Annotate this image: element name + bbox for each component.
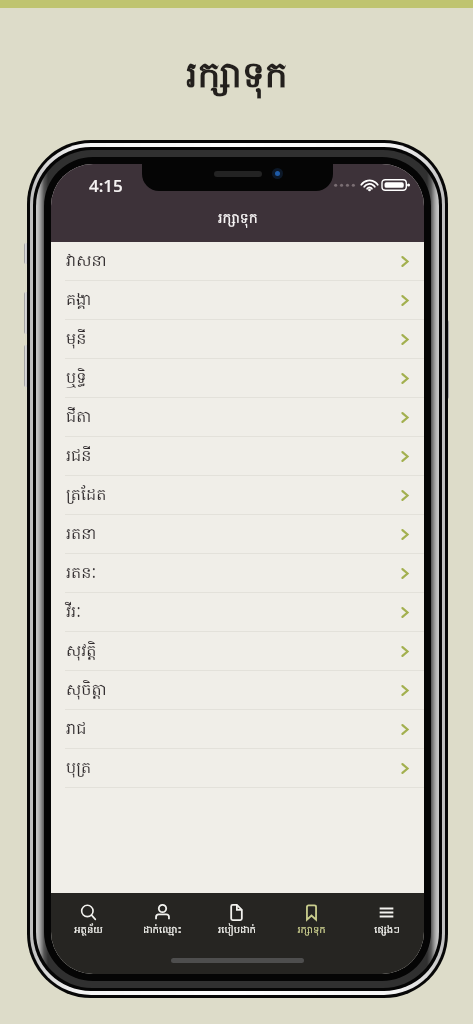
staticText: វាសនា — [66, 250, 107, 273]
staticText: មុនី — [66, 328, 87, 351]
button[interactable]: How to — [199, 903, 274, 938]
staticText: ដាក់ឈ្មោះ — [143, 923, 182, 938]
button[interactable]: វាសនា — [51, 242, 424, 281]
button[interactable]: រតនា — [51, 515, 424, 554]
staticText: រជនី — [66, 445, 92, 468]
staticText: រាជ — [66, 718, 87, 741]
button[interactable]: រតនៈ — [51, 554, 424, 593]
button[interactable]: Name — [125, 903, 199, 938]
staticText: រតនៈ — [66, 562, 97, 585]
staticText: ឬទ្ធិ — [66, 367, 87, 390]
button[interactable]: ឬទ្ធិ — [51, 359, 424, 398]
button[interactable]: More — [349, 903, 424, 938]
button[interactable]: Saved — [274, 903, 349, 938]
staticText: រក្សាទុក — [218, 209, 258, 230]
button[interactable]: រជនី — [51, 437, 424, 476]
button[interactable]: ត្រដែត — [51, 476, 424, 515]
staticText: 4:15 — [89, 174, 123, 197]
staticText: ជីតា — [66, 406, 92, 429]
staticText: សុវត្តិ — [66, 640, 97, 663]
button[interactable]: សុចិត្តា — [51, 671, 424, 710]
staticText: អត្ថន័យ — [74, 923, 103, 938]
staticText: ផ្សេងៗ — [374, 923, 400, 938]
staticText: សុចិត្តា — [66, 679, 107, 702]
staticText: បុត្រ — [66, 757, 92, 780]
staticText: គង្គា — [66, 289, 92, 312]
button[interactable]: រាជ — [51, 710, 424, 749]
button[interactable]: វីរៈ — [51, 593, 424, 632]
staticText: រក្សាទុក — [297, 923, 326, 938]
staticText: របៀបដាក់ — [218, 923, 256, 938]
staticText: ត្រដែត — [66, 484, 107, 507]
button[interactable]: សុវត្តិ — [51, 632, 424, 671]
staticText: វីរៈ — [66, 601, 82, 624]
button[interactable]: Search — [51, 903, 125, 938]
button[interactable]: បុត្រ — [51, 749, 424, 788]
staticText: រក្សាទុក — [186, 52, 288, 105]
button[interactable]: មុនី — [51, 320, 424, 359]
button[interactable]: គង្គា — [51, 281, 424, 320]
staticText: រតនា — [66, 523, 97, 546]
button[interactable]: ជីតា — [51, 398, 424, 437]
